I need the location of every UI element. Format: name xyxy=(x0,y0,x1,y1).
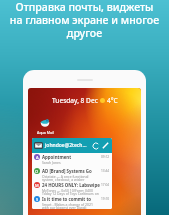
staticText: AD [Brand] Systems Go xyxy=(42,168,92,174)
staticText: 24 HOURS ONLY: Labswipe xyxy=(42,182,100,188)
staticText: Appointment xyxy=(42,154,72,160)
staticText: johndoe@2tech... xyxy=(45,142,87,149)
staticText: Is it time to commit to your... xyxy=(42,196,100,202)
button[interactable]: O xyxy=(32,167,112,181)
staticText: M xyxy=(35,183,39,188)
staticText: Aqua Mail xyxy=(37,130,54,135)
staticText: Sarah Jones xyxy=(42,160,61,165)
staticText: A xyxy=(36,155,39,160)
staticText: Отправка почты, виджеты на главном экран… xyxy=(9,0,160,40)
staticText: 19:10 xyxy=(101,197,110,201)
staticText: Tuesday, 8 Dec xyxy=(52,96,98,105)
button[interactable]: Aqua Mail app xyxy=(36,118,54,135)
staticText: MyTones — 0x50 10/Form; 0400 Today 12 Da… xyxy=(42,188,100,196)
button[interactable]: A xyxy=(32,153,112,167)
button[interactable]: Compose xyxy=(101,141,110,150)
button[interactable]: johndoe@2tech... xyxy=(32,138,112,153)
staticText: 17:04 xyxy=(101,183,110,187)
staticText: S xyxy=(36,197,39,202)
staticText: 4°C xyxy=(107,96,118,105)
staticText: 09:12 xyxy=(101,155,110,159)
staticText: 13:44 xyxy=(101,169,110,173)
button[interactable]: S xyxy=(32,195,112,209)
staticText: O xyxy=(35,169,39,174)
staticText: Octatate — A once functional system, che… xyxy=(42,174,100,182)
staticText: Smart - Makes a change of 2021 with our … xyxy=(42,202,100,209)
button[interactable]: M xyxy=(32,181,112,195)
button[interactable]: Refresh xyxy=(91,141,100,150)
